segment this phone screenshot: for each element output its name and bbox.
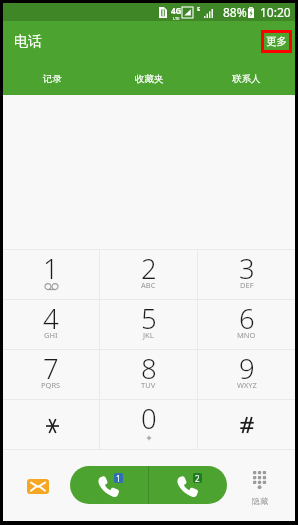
staticText: 8: [141, 350, 157, 387]
staticText: DEF: [240, 280, 254, 290]
button[interactable]: 记录: [3, 62, 101, 95]
staticText: 1: [43, 250, 59, 287]
staticText: 88%: [223, 4, 247, 20]
button[interactable]: 4: [3, 300, 99, 349]
staticText: JKL: [143, 330, 154, 340]
staticText: 7: [43, 350, 59, 387]
staticText: 收藏夹: [135, 73, 164, 85]
staticText: MNO: [237, 330, 256, 340]
button[interactable]: 更多: [261, 30, 292, 53]
button[interactable]: 联系人: [198, 62, 295, 95]
staticText: TUV: [141, 380, 156, 390]
staticText: E: [197, 5, 201, 13]
button[interactable]: 1: [3, 250, 99, 299]
staticText: 4: [43, 300, 59, 337]
staticText: GHI: [44, 330, 58, 340]
button[interactable]: 6: [198, 300, 295, 349]
staticText: WXYZ: [237, 380, 257, 390]
button[interactable]: [3, 400, 99, 449]
button[interactable]: 2: [100, 250, 197, 299]
staticText: 更多: [266, 35, 287, 48]
button[interactable]: 3: [198, 250, 295, 299]
staticText: 5: [141, 300, 157, 337]
staticText: 电话: [14, 33, 42, 51]
staticText: LTE: [173, 16, 180, 21]
button[interactable]: Call with SIM 2: [149, 466, 227, 504]
button[interactable]: [198, 400, 295, 449]
staticText: 10:20: [260, 4, 291, 20]
button[interactable]: 9: [198, 350, 295, 399]
staticText: 隐藏: [252, 496, 268, 506]
button[interactable]: 收藏夹: [101, 62, 198, 95]
button[interactable]: Call with SIM 1: [70, 466, 148, 504]
staticText: 4G: [171, 5, 182, 16]
staticText: 2: [195, 473, 200, 483]
staticText: 6: [239, 300, 255, 337]
button[interactable]: 0: [100, 400, 197, 449]
staticText: 记录: [43, 73, 62, 85]
button[interactable]: Hide keypad: [252, 471, 268, 506]
staticText: 9: [239, 350, 255, 387]
button[interactable]: 7: [3, 350, 99, 399]
staticText: 联系人: [232, 73, 261, 85]
staticText: 2: [141, 250, 157, 287]
button[interactable]: 8: [100, 350, 197, 399]
staticText: ABC: [141, 280, 156, 290]
staticText: 0: [141, 400, 157, 437]
button[interactable]: Messages: [27, 479, 49, 494]
staticText: PQRS: [41, 380, 61, 390]
staticText: 3: [239, 250, 255, 287]
staticText: 1: [116, 473, 121, 483]
button[interactable]: 5: [100, 300, 197, 349]
